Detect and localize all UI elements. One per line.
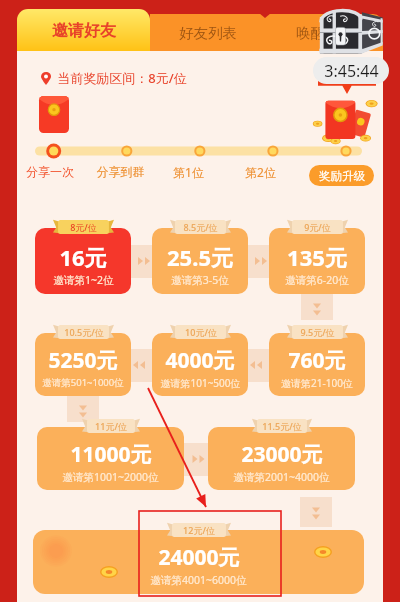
staticText: 9元/位 [304, 221, 331, 233]
staticText: 邀请第21-100位 [281, 376, 353, 390]
staticText: 分享一次 [25, 164, 75, 179]
button[interactable]: 5250元 [35, 325, 131, 396]
staticText: 8元/位 [70, 221, 97, 233]
staticText: 4000元 [165, 346, 235, 375]
staticText: 第1位 [163, 164, 214, 180]
staticText: 10元/位 [185, 326, 217, 338]
button[interactable]: Countdown timer [313, 57, 389, 84]
staticText: 唤醒好友 [296, 24, 354, 42]
staticText: 23000元 [241, 440, 323, 469]
staticText: 5250元 [48, 346, 118, 375]
button[interactable]: 24000元 [33, 523, 364, 594]
staticText: 16元 [59, 242, 107, 272]
staticText: 3:45:44 [324, 60, 379, 82]
staticText: 第2位 [235, 164, 286, 180]
staticText: 12元/位 [183, 524, 215, 536]
button[interactable]: 奖励升级 [309, 165, 374, 186]
staticText: 邀请好友 [52, 21, 116, 41]
staticText: 11元/位 [95, 420, 127, 432]
button[interactable]: 760元 [269, 325, 365, 396]
staticText: 分享到群 [95, 164, 146, 179]
staticText: 当前奖励区间：8元/位 [57, 69, 187, 87]
staticText: 邀请第4001~6000位 [150, 573, 247, 587]
button[interactable]: 唤醒好友 [266, 14, 383, 52]
button[interactable]: 好友列表 [150, 14, 266, 52]
button[interactable]: 邀请好友 [17, 9, 150, 52]
staticText: 11000元 [70, 440, 152, 469]
button[interactable]: 11000元 [37, 419, 184, 490]
staticText: 25.5元 [167, 242, 233, 272]
button[interactable]: 23000元 [208, 419, 355, 490]
button[interactable]: 25.5元 [152, 220, 248, 294]
staticText: 135元 [287, 242, 347, 272]
staticText: 邀请第501~1000位 [42, 376, 124, 389]
staticText: 邀请第1~2位 [53, 273, 114, 287]
staticText: 邀请第2001~4000位 [233, 470, 330, 484]
button[interactable]: 135元 [269, 220, 365, 294]
staticText: 邀请第1001~2000位 [62, 470, 159, 484]
staticText: 邀请第3-5位 [171, 273, 229, 287]
staticText: 邀请第6-20位 [285, 273, 349, 287]
button[interactable]: 4000元 [152, 325, 248, 396]
button[interactable]: 16元 [35, 220, 131, 294]
staticText: 760元 [288, 346, 346, 375]
staticText: 11.5元/位 [262, 420, 302, 432]
staticText: 24000元 [158, 543, 240, 572]
staticText: 8.5元/位 [183, 221, 218, 233]
staticText: 邀请第101~500位 [160, 376, 241, 390]
staticText: 奖励升级 [319, 169, 365, 183]
staticText: 9.5元/位 [300, 326, 335, 338]
staticText: 好友列表 [179, 24, 237, 42]
staticText: 10.5元/位 [64, 326, 104, 338]
